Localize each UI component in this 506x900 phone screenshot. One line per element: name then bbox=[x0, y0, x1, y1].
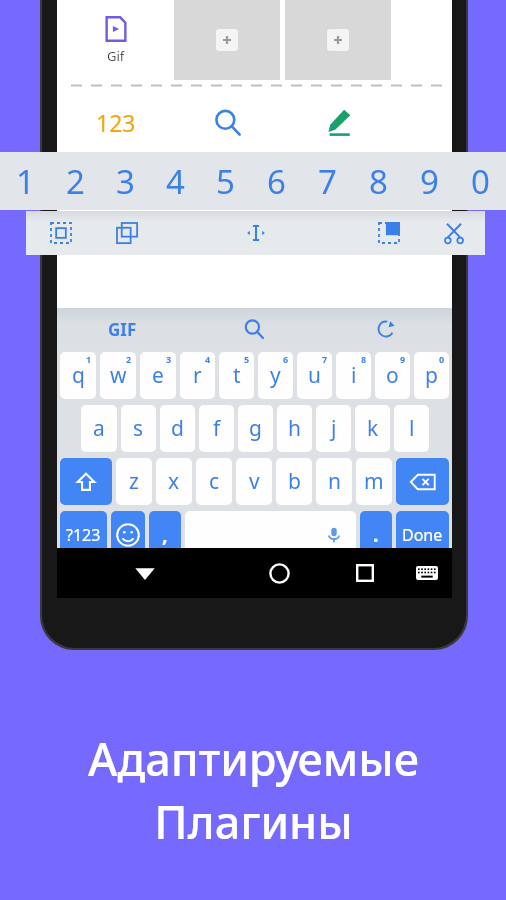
staticText: h bbox=[288, 414, 301, 443]
button[interactable]: ?123 bbox=[60, 511, 107, 558]
button[interactable]: GIF bbox=[57, 308, 188, 350]
button[interactable]: Shift bbox=[60, 458, 112, 505]
button[interactable]: Copy bbox=[96, 211, 157, 255]
staticText: 123 bbox=[96, 107, 136, 138]
staticText: 6 bbox=[267, 159, 286, 204]
button[interactable]: Select all bbox=[26, 211, 96, 255]
button[interactable]: 7 bbox=[302, 152, 353, 210]
button[interactable]: t bbox=[219, 352, 254, 399]
button[interactable]: 2 bbox=[50, 152, 100, 210]
button[interactable]: 123 bbox=[63, 91, 169, 153]
button[interactable]: Emoji bbox=[111, 511, 145, 558]
staticText: 8 bbox=[361, 353, 367, 365]
staticText: s bbox=[133, 414, 144, 443]
button[interactable]: m bbox=[356, 458, 392, 505]
staticText: o bbox=[386, 361, 399, 390]
staticText: u bbox=[308, 361, 321, 390]
staticText: a bbox=[93, 414, 105, 443]
staticText: i bbox=[351, 361, 357, 390]
button[interactable]: p bbox=[414, 352, 449, 399]
staticText: e bbox=[152, 361, 164, 390]
button[interactable]: 9 bbox=[404, 152, 455, 210]
staticText: 2 bbox=[66, 159, 85, 204]
button[interactable]: c bbox=[196, 458, 232, 505]
staticText: c bbox=[209, 467, 220, 496]
button[interactable]: a bbox=[81, 405, 117, 452]
button[interactable]: s bbox=[121, 405, 156, 452]
button[interactable]: Recents bbox=[327, 548, 402, 598]
staticText: 6 bbox=[283, 353, 289, 365]
button[interactable]: Backspace bbox=[396, 458, 449, 505]
button[interactable]: Add plugin bbox=[174, 0, 280, 80]
button[interactable]: Back bbox=[57, 548, 232, 598]
button[interactable]: Switch keyboard bbox=[402, 548, 452, 598]
button[interactable]: b bbox=[276, 458, 312, 505]
button[interactable]: k bbox=[355, 405, 390, 452]
button[interactable]: Done bbox=[396, 511, 449, 558]
button[interactable]: 6 bbox=[251, 152, 302, 210]
staticText: z bbox=[129, 467, 139, 496]
button[interactable]: o bbox=[375, 352, 410, 399]
button[interactable]: . bbox=[360, 511, 392, 558]
staticText: r bbox=[193, 361, 202, 390]
button[interactable]: n bbox=[316, 458, 352, 505]
button[interactable]: Select bbox=[219, 211, 293, 255]
button[interactable]: Edit bbox=[285, 91, 391, 153]
button[interactable]: 5 bbox=[200, 152, 251, 210]
staticText: 8 bbox=[369, 159, 388, 204]
staticText: x bbox=[168, 467, 180, 496]
staticText: Адаптируемые bbox=[88, 728, 419, 789]
button[interactable]: Search bbox=[174, 91, 280, 153]
button[interactable]: z bbox=[116, 458, 152, 505]
button[interactable]: Gif bbox=[63, 0, 169, 80]
button[interactable]: , bbox=[149, 511, 181, 558]
button[interactable]: Add plugin bbox=[285, 0, 391, 80]
staticText: q bbox=[72, 361, 85, 390]
staticText: y bbox=[270, 361, 281, 390]
button[interactable]: Search bbox=[188, 308, 320, 350]
staticText: 0 bbox=[471, 159, 490, 204]
button[interactable]: y bbox=[258, 352, 293, 399]
button[interactable]: 4 bbox=[150, 152, 200, 210]
button[interactable]: u bbox=[297, 352, 332, 399]
staticText: b bbox=[288, 467, 301, 496]
staticText: m bbox=[364, 467, 384, 496]
staticText: 1 bbox=[86, 353, 92, 365]
staticText: 7 bbox=[318, 159, 337, 204]
staticText: g bbox=[249, 414, 262, 443]
button[interactable]: Refresh bbox=[320, 308, 452, 350]
button[interactable]: f bbox=[199, 405, 234, 452]
button[interactable]: l bbox=[394, 405, 429, 452]
button[interactable]: i bbox=[336, 352, 371, 399]
staticText: 1 bbox=[16, 159, 35, 204]
button[interactable]: Paste bbox=[355, 211, 423, 255]
button[interactable]: g bbox=[238, 405, 273, 452]
button[interactable]: d bbox=[160, 405, 195, 452]
button[interactable]: 1 bbox=[0, 152, 50, 210]
button[interactable]: h bbox=[277, 405, 312, 452]
button[interactable]: w bbox=[100, 352, 136, 399]
button[interactable]: Home bbox=[232, 548, 327, 598]
button[interactable]: Cut bbox=[423, 211, 485, 255]
button[interactable]: e bbox=[140, 352, 176, 399]
button[interactable]: r bbox=[180, 352, 215, 399]
staticText: 3 bbox=[166, 353, 172, 365]
staticText: w bbox=[110, 361, 127, 390]
staticText: , bbox=[162, 521, 168, 548]
button[interactable]: q bbox=[60, 352, 96, 399]
button[interactable]: x bbox=[156, 458, 192, 505]
staticText: 9 bbox=[420, 159, 439, 204]
button[interactable]: 3 bbox=[100, 152, 150, 210]
staticText: v bbox=[249, 467, 260, 496]
button[interactable]: v bbox=[236, 458, 272, 505]
staticText: Done bbox=[402, 524, 443, 546]
staticText: . bbox=[373, 521, 379, 548]
staticText: k bbox=[367, 414, 379, 443]
button[interactable]: Space bbox=[185, 511, 356, 558]
button[interactable]: 0 bbox=[455, 152, 506, 210]
button[interactable]: 8 bbox=[353, 152, 404, 210]
staticText: l bbox=[409, 414, 415, 443]
staticText: 4 bbox=[166, 159, 185, 204]
staticText: 7 bbox=[322, 353, 328, 365]
button[interactable]: j bbox=[316, 405, 351, 452]
